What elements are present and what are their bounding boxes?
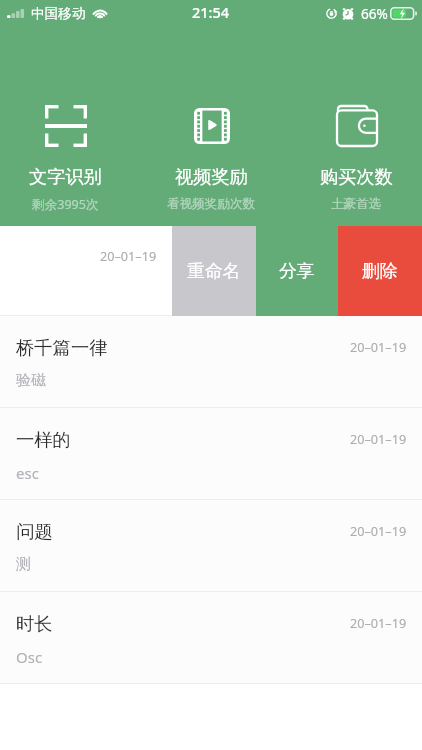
staticText: 文字识别 — [29, 165, 102, 188]
staticText: 土豪首选 — [331, 196, 382, 212]
staticText: 20–01–19 — [350, 338, 407, 355]
button[interactable]: 文字识别 — [0, 0, 131, 226]
button[interactable]: 时长 — [0, 592, 422, 684]
button[interactable]: 删除 — [338, 226, 422, 316]
staticText: 重命名 — [187, 260, 241, 282]
staticText: 20–01–19 — [100, 247, 157, 264]
button[interactable]: 重命名 — [172, 226, 256, 316]
staticText: 20–01–19 — [350, 522, 407, 539]
staticText: 分享 — [279, 260, 315, 282]
staticText: 中国移动 — [31, 5, 86, 22]
staticText: 一样的 — [16, 428, 71, 451]
button[interactable]: 20–01–19 — [0, 226, 172, 316]
staticText: 看视频奖励次数 — [167, 196, 256, 212]
staticText: 66% — [361, 4, 388, 23]
other: 文字识别 — [45, 105, 87, 147]
staticText: 删除 — [362, 260, 398, 282]
staticText: Osc — [16, 647, 43, 667]
staticText: 购买次数 — [320, 165, 393, 188]
button[interactable]: 一样的 — [0, 408, 422, 500]
staticText: 验磁 — [16, 371, 46, 390]
staticText: esc — [16, 463, 39, 483]
button[interactable]: 购买次数 — [291, 0, 422, 226]
staticText: 视频奖励 — [175, 165, 248, 188]
staticText: 时长 — [16, 612, 53, 635]
button[interactable]: 视频奖励 — [146, 0, 277, 226]
staticText: 20–01–19 — [350, 430, 407, 447]
staticText: 测 — [16, 555, 31, 574]
staticText: 20–01–19 — [350, 614, 407, 631]
button[interactable]: 分享 — [256, 226, 338, 316]
button[interactable]: 问题 — [0, 500, 422, 592]
staticText: 问题 — [16, 520, 53, 543]
other: 购买次数 — [337, 106, 377, 146]
other: 视频奖励 — [194, 108, 230, 144]
staticText: 桥千篇一律 — [16, 336, 108, 359]
staticText: 21:54 — [192, 2, 230, 22]
button[interactable]: 桥千篇一律 — [0, 316, 422, 408]
staticText: 剩余3995次 — [32, 196, 99, 213]
